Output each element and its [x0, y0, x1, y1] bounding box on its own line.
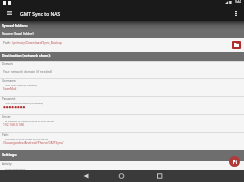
staticText: Path:	[3, 41, 11, 45]
button[interactable]: Save	[229, 156, 240, 167]
button[interactable]: More options	[233, 10, 239, 16]
staticText: Your user name (if needed)	[5, 83, 37, 86]
button[interactable]: Path:	[0, 132, 244, 150]
button[interactable]: Activity:	[0, 161, 244, 170]
staticText: ScanMail	[3, 87, 17, 91]
staticText: Your saved password (if needed)	[5, 101, 43, 104]
staticText: Password:	[2, 97, 16, 101]
staticText: Username:	[2, 79, 17, 83]
button[interactable]: Domain:	[0, 61, 244, 78]
button[interactable]: Server:	[0, 114, 244, 132]
button[interactable]: Username:	[0, 78, 244, 96]
button[interactable]: Password:	[0, 96, 244, 114]
staticText: Synced folders:	[2, 23, 28, 28]
staticText: 9:44	[235, 0, 241, 4]
staticText: Domain:	[2, 62, 14, 66]
staticText: The path to your folder on the server	[5, 137, 49, 140]
staticText: Activity:	[2, 162, 13, 166]
staticText: Destination (network share):	[2, 53, 51, 58]
button[interactable]: Browse folder	[232, 41, 241, 49]
button[interactable]: Settings:	[0, 150, 244, 161]
staticText: Settings:	[2, 152, 17, 157]
staticText: /primary/Download/Sync_Backup	[12, 41, 62, 45]
button[interactable]: Source (local folder)	[0, 30, 244, 38]
staticText: Server:	[2, 115, 12, 119]
staticText: Show notification	[5, 167, 26, 170]
staticText: /Sauvegardes/Android/Phone/GMTSync/	[3, 141, 64, 145]
button[interactable]: Open navigation drawer	[6, 10, 12, 16]
staticText: Path:	[2, 133, 9, 137]
staticText: Source (local folder)	[2, 31, 34, 36]
staticText: IP address or netbios name of your serve…	[5, 119, 55, 122]
staticText: Your network domain (if needed)	[3, 70, 53, 74]
staticText: GMT Sync to NAS	[20, 11, 61, 18]
button[interactable]: Path:	[0, 38, 244, 52]
staticText: ●●●●●●●●	[3, 105, 26, 109]
button[interactable]: Synced folders:	[0, 21, 244, 30]
staticText: 192.168.0.188	[3, 123, 24, 127]
button[interactable]: Destination (network share):	[0, 52, 244, 61]
